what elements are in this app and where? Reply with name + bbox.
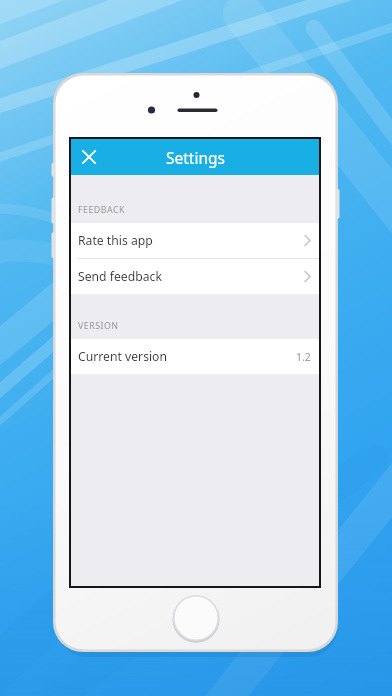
staticText: Rate this app <box>78 232 153 249</box>
staticText: 1.2 <box>296 350 311 364</box>
staticText: FEEDBACK <box>78 204 125 216</box>
staticText: Settings <box>166 147 225 168</box>
staticText: VERSION <box>78 320 119 332</box>
button[interactable]: Rate this app <box>71 223 319 258</box>
button[interactable]: Current version <box>71 339 319 374</box>
staticText: Current version <box>78 348 168 365</box>
button[interactable]: Send feedback <box>71 259 319 294</box>
button[interactable]: Close <box>71 139 107 175</box>
staticText: Send feedback <box>78 268 162 285</box>
